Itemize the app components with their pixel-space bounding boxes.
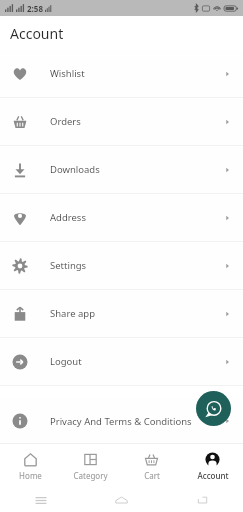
staticText: Settings: [50, 259, 87, 272]
button[interactable]: Wishlist: [0, 50, 243, 97]
staticText: Address: [50, 211, 86, 224]
button[interactable]: Settings: [0, 242, 243, 289]
button[interactable]: Privacy And Terms & Conditions: [0, 399, 243, 443]
staticText: Home: [19, 470, 42, 481]
button[interactable]: Chat on WhatsApp: [196, 391, 231, 426]
button[interactable]: Recents: [0, 488, 81, 512]
button[interactable]: Orders: [0, 98, 243, 145]
staticText: Orders: [50, 115, 81, 128]
button[interactable]: Home: [81, 488, 162, 512]
staticText: Cart: [144, 470, 160, 481]
button[interactable]: Account: [182, 444, 243, 488]
button[interactable]: Back: [162, 488, 243, 512]
button[interactable]: Downloads: [0, 146, 243, 193]
staticText: Account: [197, 470, 229, 481]
staticText: Downloads: [50, 163, 100, 176]
staticText: Category: [73, 470, 108, 481]
button[interactable]: Logout: [0, 338, 243, 385]
staticText: Share app: [50, 307, 95, 320]
button[interactable]: Share app: [0, 290, 243, 337]
button[interactable]: Address: [0, 194, 243, 241]
staticText: Account: [10, 24, 64, 43]
staticText: Logout: [50, 355, 82, 368]
staticText: Privacy And Terms & Conditions: [50, 415, 192, 428]
button[interactable]: Cart: [121, 444, 182, 488]
staticText: Wishlist: [50, 67, 85, 80]
staticText: 2:58: [27, 3, 43, 14]
button[interactable]: Category: [60, 444, 121, 488]
button[interactable]: Home: [0, 444, 60, 488]
